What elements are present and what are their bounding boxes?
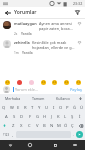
button[interactable]: R <box>22 103 29 112</box>
button[interactable]: Filter <box>73 8 82 17</box>
staticText: Kullanıcı <box>56 96 71 101</box>
staticText: Aynen ama annesi papir zaten, bocan eki … <box>39 21 75 31</box>
button[interactable]: Paylaş <box>70 87 82 92</box>
button[interactable]: fire <box>16 79 22 85</box>
button[interactable]: J <box>48 112 55 121</box>
button[interactable]: Yanıtla <box>21 32 32 36</box>
button[interactable]: ?123 <box>2 131 11 138</box>
button[interactable]: E <box>15 103 22 112</box>
button[interactable]: Ö <box>62 121 69 130</box>
button[interactable]: grin <box>51 79 57 85</box>
staticText: Z <box>12 123 15 129</box>
button[interactable]: zehirella <box>0 38 85 57</box>
button[interactable]: M <box>55 121 62 130</box>
button[interactable]: K <box>55 112 62 121</box>
staticText: A <box>5 114 8 120</box>
staticText: M <box>57 123 61 129</box>
staticText: Ö <box>64 123 68 129</box>
button[interactable]: Shift <box>0 121 9 130</box>
staticText: D <box>20 114 24 120</box>
button[interactable]: T <box>29 103 36 112</box>
button[interactable]: Period <box>72 131 76 138</box>
button[interactable]: F <box>26 112 34 121</box>
button[interactable]: wow <box>75 79 81 85</box>
staticText: Yorum ekle... <box>15 87 39 92</box>
staticText: U <box>45 105 49 111</box>
staticText: V <box>36 123 39 129</box>
staticText: C <box>28 123 31 129</box>
staticText: Ş <box>71 114 74 120</box>
staticText: N <box>50 123 54 129</box>
staticText: Tamam <box>32 96 45 101</box>
staticText: F <box>29 114 32 120</box>
staticText: I <box>53 105 55 111</box>
staticText: Kesinlikle çok mzak hojandan, ellerde ve… <box>32 40 75 50</box>
button[interactable]: blush <box>28 79 34 85</box>
button[interactable]: Z <box>9 121 17 130</box>
button[interactable]: A <box>2 112 10 121</box>
button[interactable]: Ş <box>69 112 76 121</box>
staticText: Y <box>38 105 41 111</box>
staticText: , <box>12 132 14 137</box>
button[interactable]: Q <box>0 103 8 112</box>
button[interactable]: Backspace <box>76 121 85 130</box>
button[interactable]: Merhaba <box>0 94 26 102</box>
button[interactable]: Ğ <box>71 103 78 112</box>
button[interactable]: X <box>17 121 25 130</box>
staticText: Merhaba <box>5 96 21 101</box>
button[interactable]: Ç <box>69 121 76 130</box>
button[interactable]: sad <box>63 79 69 85</box>
button[interactable]: U <box>43 103 50 112</box>
staticText: Ü <box>80 105 84 111</box>
button[interactable]: N <box>48 121 55 130</box>
button[interactable]: Home <box>17 140 42 150</box>
button[interactable]: Hide keyboard <box>3 140 17 150</box>
staticText: P <box>66 105 69 111</box>
button[interactable]: D <box>18 112 26 121</box>
button[interactable]: Back <box>3 8 12 17</box>
button[interactable]: Yanıtla <box>22 51 33 55</box>
button[interactable]: Ü <box>78 103 85 112</box>
button[interactable]: İ <box>76 112 83 121</box>
button[interactable]: Like <box>77 40 82 45</box>
staticText: 2s <box>14 32 18 36</box>
button[interactable]: S <box>10 112 18 121</box>
staticText: mutluaygun <box>14 21 37 26</box>
button[interactable]: Y <box>36 103 43 112</box>
button[interactable]: Send <box>76 131 83 138</box>
staticText: K <box>57 114 60 120</box>
staticText: L <box>64 114 67 120</box>
staticText: zehirella <box>14 40 30 45</box>
button[interactable]: Comma <box>11 131 15 138</box>
staticText: Yorumlar <box>14 9 37 16</box>
staticText: H <box>43 114 47 120</box>
staticText: B <box>43 123 46 129</box>
button[interactable]: P <box>64 103 71 112</box>
button[interactable]: Voice input <box>76 94 85 102</box>
button[interactable]: heart <box>4 79 10 85</box>
staticText: . <box>73 132 75 137</box>
button[interactable]: mutluaygun <box>0 19 85 38</box>
staticText: R <box>24 105 27 111</box>
staticText: 23:32 <box>73 1 83 6</box>
button[interactable]: Keyboard switch <box>68 140 82 150</box>
button[interactable]: B <box>41 121 48 130</box>
button[interactable]: Recents <box>42 140 68 150</box>
button[interactable]: L <box>62 112 69 121</box>
button[interactable]: Like <box>77 21 82 26</box>
button[interactable]: G <box>34 112 41 121</box>
button[interactable]: Kullanıcı <box>51 94 76 102</box>
staticText: X <box>20 123 23 129</box>
staticText: Q <box>2 105 6 111</box>
staticText: ?123 <box>3 133 10 137</box>
button[interactable]: V <box>33 121 41 130</box>
button[interactable]: smile <box>40 79 46 85</box>
button[interactable]: C <box>25 121 33 130</box>
button[interactable]: O <box>57 103 64 112</box>
button[interactable]: Tamam <box>26 94 51 102</box>
button[interactable]: H <box>41 112 48 121</box>
staticText: E <box>17 105 20 111</box>
button[interactable]: I <box>50 103 57 112</box>
button[interactable]: W <box>8 103 15 112</box>
